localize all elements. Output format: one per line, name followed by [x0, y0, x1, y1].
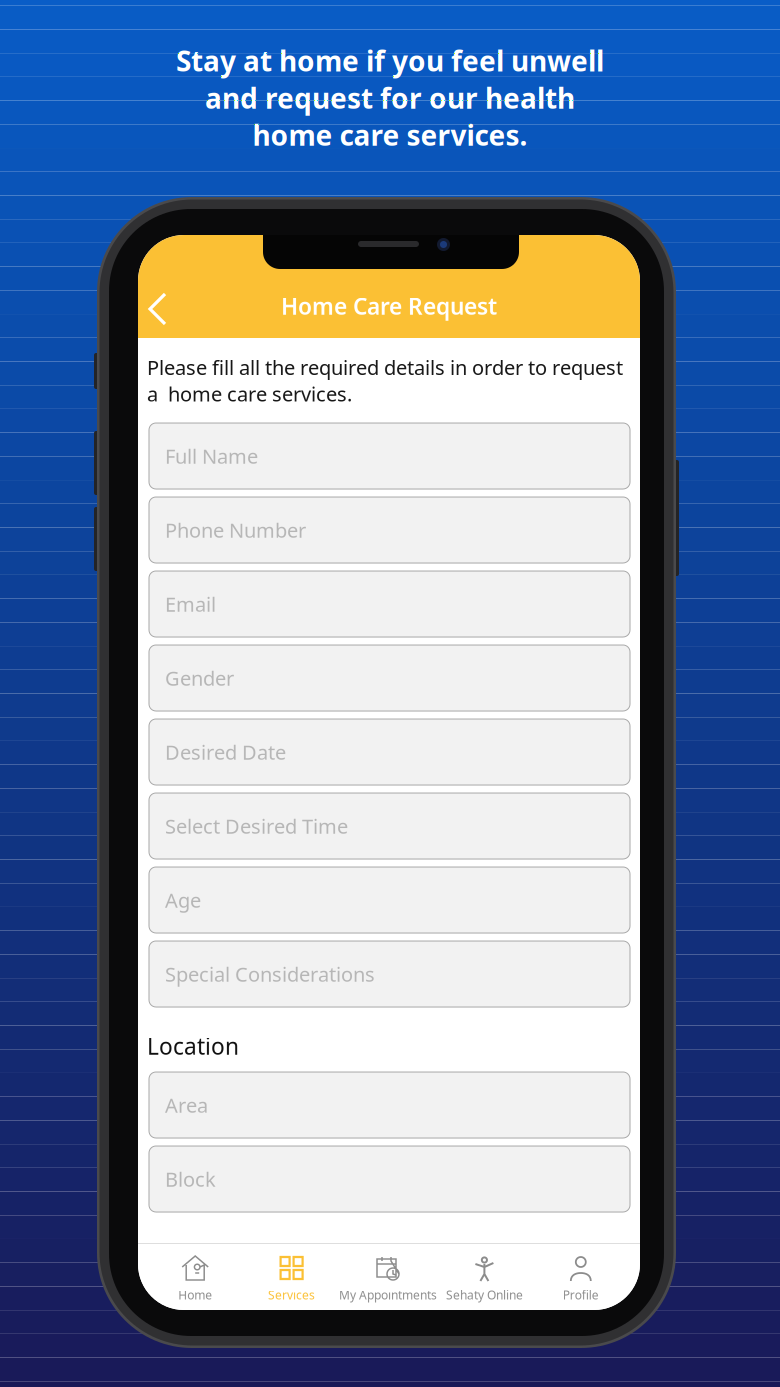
staticText: Phone Number — [165, 517, 306, 543]
button[interactable]: Phone Number — [149, 497, 630, 563]
staticText: and request for our health — [205, 79, 575, 116]
button[interactable]: Profile — [533, 1243, 629, 1310]
staticText: Full Name — [165, 443, 258, 469]
staticText: My Appointments — [339, 1287, 437, 1303]
button[interactable]: My Appointments — [340, 1243, 436, 1310]
staticText: Stay at home if you feel unwell — [176, 42, 604, 79]
staticText: Select Desired Time — [165, 813, 348, 839]
button[interactable]: Block — [149, 1146, 630, 1212]
staticText: Email — [165, 591, 216, 617]
button[interactable]: Email — [149, 571, 630, 637]
staticText: Sehaty Online — [446, 1287, 523, 1303]
button[interactable]: Back — [148, 286, 194, 332]
button[interactable]: Services — [243, 1243, 340, 1310]
button[interactable]: Full Name — [149, 423, 630, 489]
button[interactable]: Select Desired Time — [149, 793, 630, 859]
staticText: Home — [178, 1287, 212, 1303]
staticText: Block — [165, 1166, 216, 1192]
button[interactable]: Area — [149, 1072, 630, 1138]
staticText: Gender — [165, 665, 234, 691]
button[interactable]: Special Considerations — [149, 941, 630, 1007]
staticText: Special Considerations — [165, 961, 375, 987]
button[interactable]: Home — [147, 1243, 243, 1310]
button[interactable]: Sehaty Online — [436, 1243, 533, 1310]
staticText: home care services. — [252, 116, 527, 154]
staticText: Location — [147, 1031, 239, 1061]
staticText: Desired Date — [165, 739, 286, 765]
staticText: Age — [165, 887, 201, 913]
button[interactable]: Gender — [149, 645, 630, 711]
staticText: Area — [165, 1092, 208, 1118]
staticText: Services — [268, 1287, 315, 1303]
staticText: Profile — [563, 1287, 599, 1303]
staticText: Please fill all the required details in … — [147, 354, 623, 407]
button[interactable]: Age — [149, 867, 630, 933]
staticText: Home Care Request — [281, 291, 497, 321]
button[interactable]: Desired Date — [149, 719, 630, 785]
